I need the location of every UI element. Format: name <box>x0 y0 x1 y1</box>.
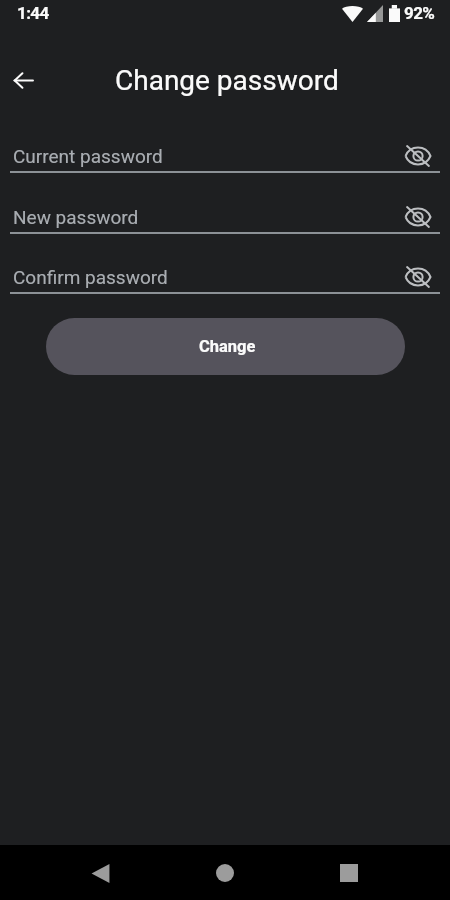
staticText: Confirm password <box>13 266 168 288</box>
button[interactable]: Home <box>203 851 247 895</box>
button[interactable]: Recent apps <box>327 851 371 895</box>
button[interactable]: Show password <box>400 199 436 235</box>
staticText: 92% <box>404 3 435 23</box>
button[interactable]: Show password <box>400 138 436 174</box>
staticText: Change <box>199 337 256 356</box>
staticText: Change password <box>115 64 339 97</box>
button[interactable]: Show password <box>400 259 436 295</box>
button[interactable]: Change <box>46 318 405 375</box>
staticText: 1:44 <box>17 3 49 23</box>
button[interactable]: Back <box>3 60 43 100</box>
button[interactable]: Back <box>78 851 122 895</box>
staticText: New password <box>13 206 139 228</box>
staticText: Current password <box>13 145 163 167</box>
